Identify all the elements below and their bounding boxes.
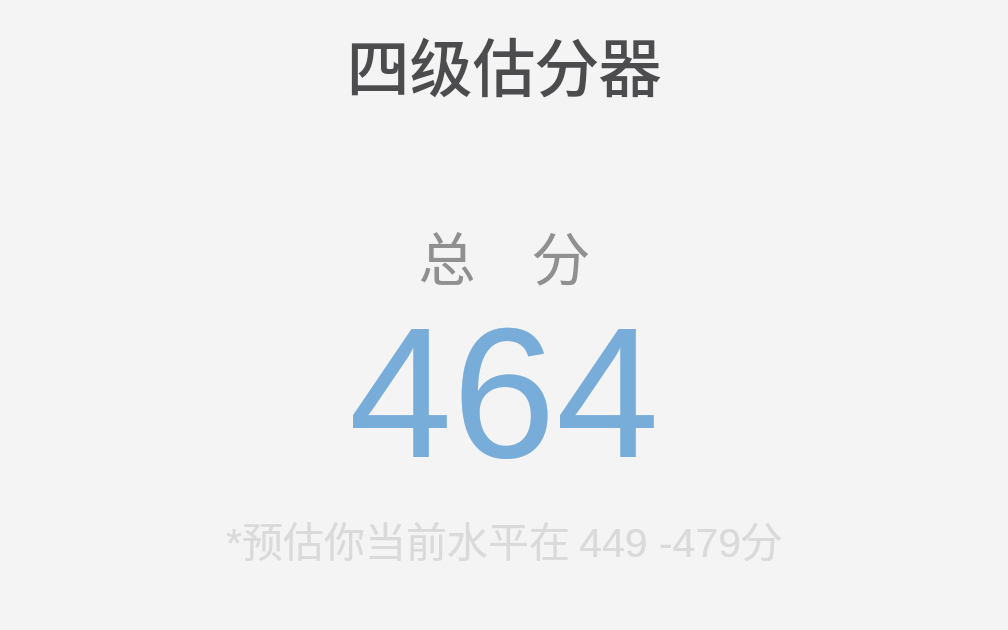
staticText: 464: [0, 289, 1008, 497]
staticText: 总 分: [0, 214, 1008, 297]
staticText: 四级估分器: [0, 18, 1008, 109]
button[interactable]: 总 分: [0, 190, 1008, 490]
staticText: *预估你当前水平在 449 -479分: [0, 509, 1008, 568]
